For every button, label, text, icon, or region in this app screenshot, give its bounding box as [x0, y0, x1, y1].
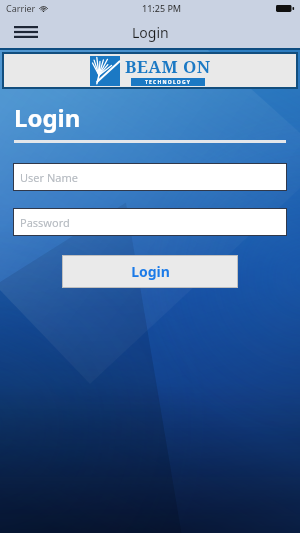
- button[interactable]: User Name: [14, 164, 286, 190]
- staticText: BEAM ON: [125, 55, 211, 78]
- staticText: Carrier: [6, 2, 36, 14]
- staticText: TECHNOLOGY: [145, 79, 192, 86]
- button[interactable]: Login: [63, 256, 237, 287]
- staticText: Login: [131, 262, 170, 281]
- button[interactable]: Menu: [8, 17, 44, 47]
- staticText: Password: [20, 215, 70, 230]
- staticText: Login: [14, 101, 81, 134]
- staticText: 11:25 PM: [142, 2, 182, 14]
- staticText: Login: [132, 23, 169, 42]
- staticText: User Name: [20, 170, 78, 185]
- button[interactable]: Password: [14, 209, 286, 235]
